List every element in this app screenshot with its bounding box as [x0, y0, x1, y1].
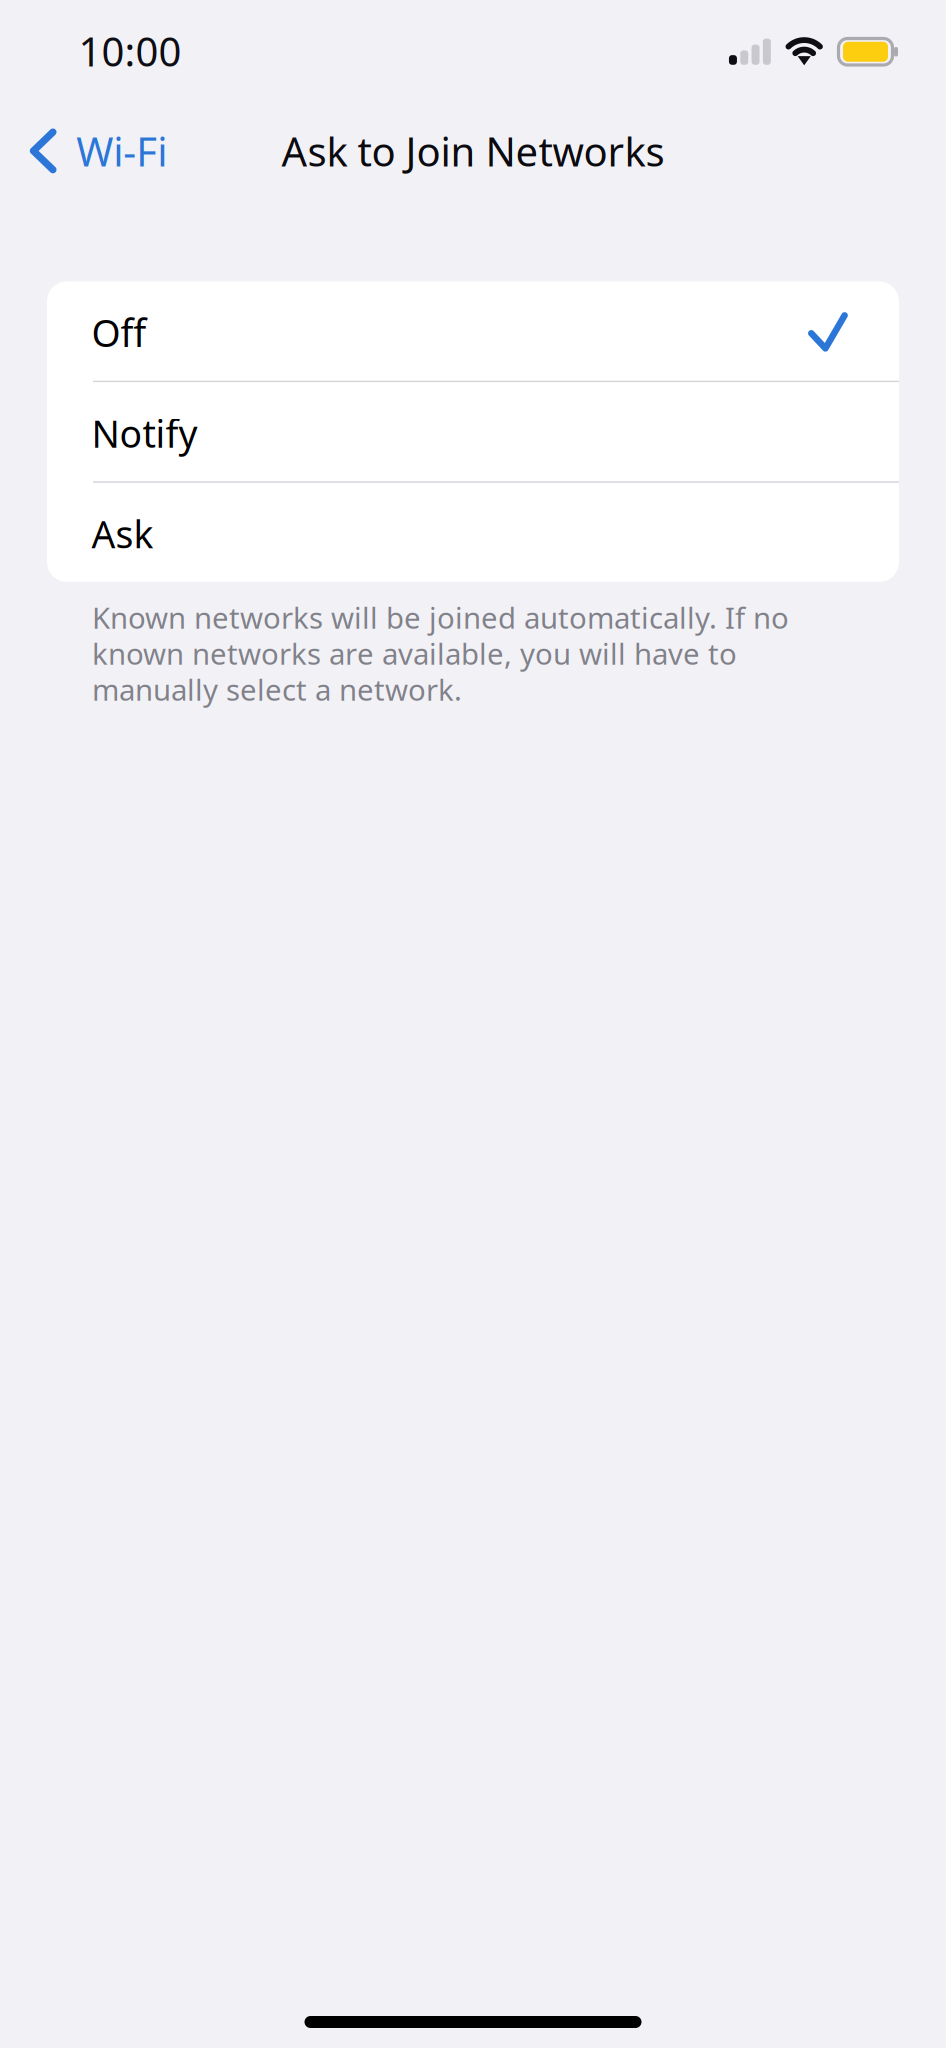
staticText: Ask: [91, 509, 153, 559]
button[interactable]: Ask: [47, 483, 899, 582]
button[interactable]: Notify: [47, 382, 899, 481]
button[interactable]: Back to Wi-Fi: [0, 112, 185, 189]
staticText: Known networks will be joined automatica…: [92, 598, 789, 709]
button[interactable]: Off: [47, 281, 899, 381]
staticText: 10:00: [78, 24, 181, 78]
staticText: Wi-Fi: [76, 124, 167, 177]
staticText: Notify: [91, 408, 197, 458]
staticText: Ask to Join Networks: [281, 124, 664, 177]
staticText: Off: [91, 308, 146, 357]
